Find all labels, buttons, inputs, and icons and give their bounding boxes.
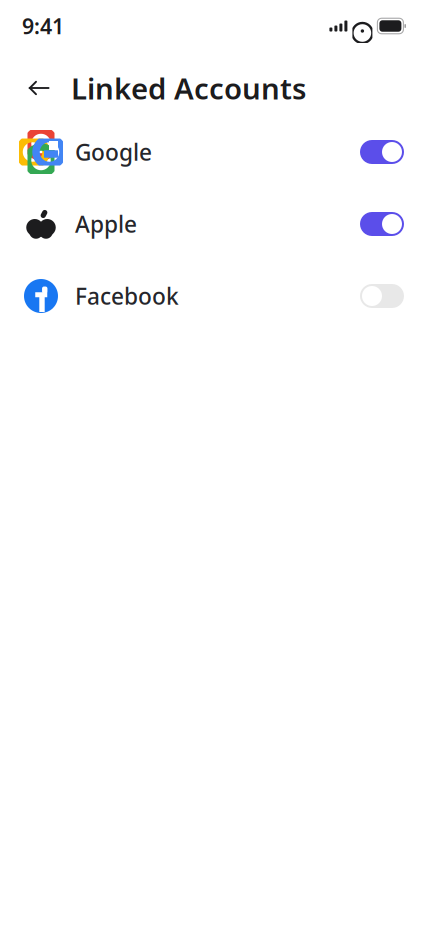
button[interactable]: Google: [0, 116, 428, 188]
staticText: Google: [75, 137, 152, 167]
staticText: 9:41: [22, 12, 64, 40]
button[interactable]: Facebook: [0, 260, 428, 332]
staticText: Linked Accounts: [71, 68, 306, 107]
button[interactable]: Back: [17, 66, 61, 110]
staticText: Apple: [75, 209, 137, 239]
button[interactable]: Apple: [0, 188, 428, 260]
staticText: Facebook: [75, 281, 179, 311]
